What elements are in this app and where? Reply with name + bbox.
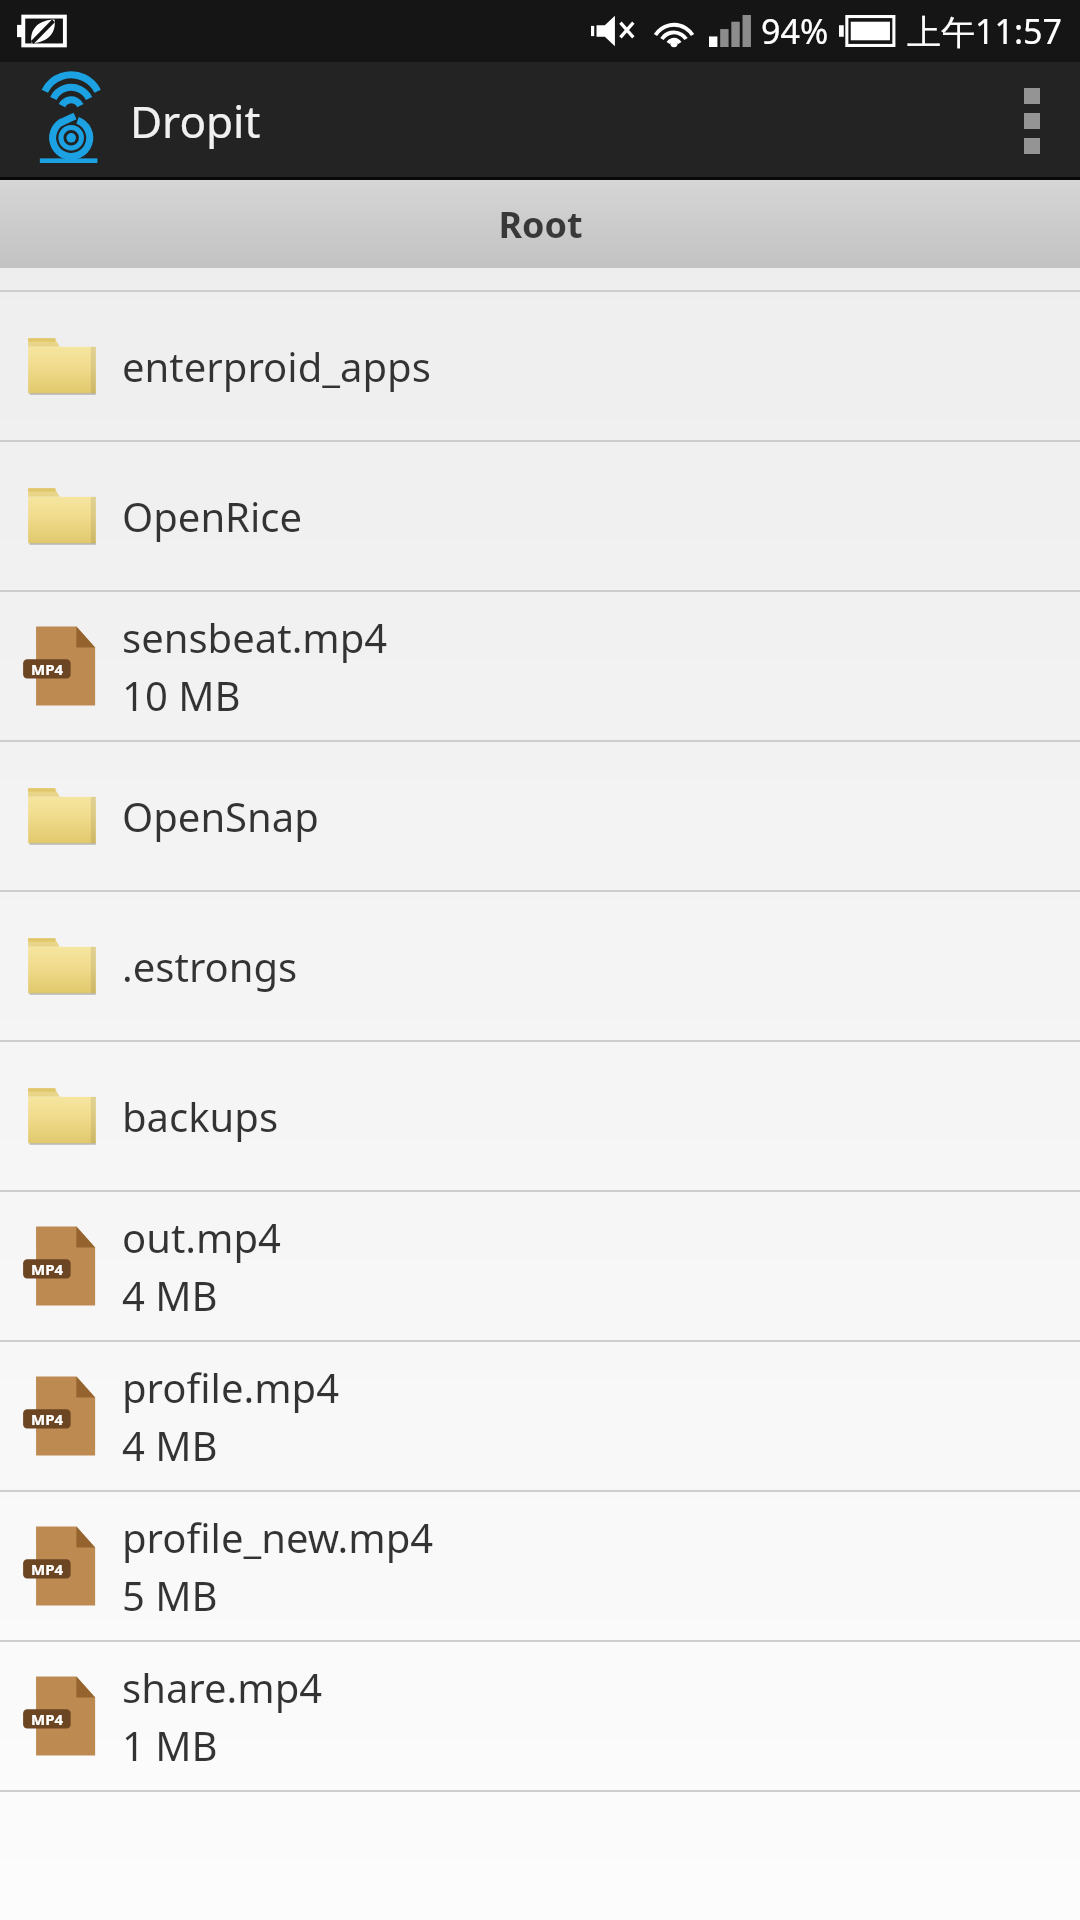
staticText: 1 MB [122,1718,218,1772]
staticText: share.mp4 [122,1660,323,1714]
button[interactable]: MP4 [0,592,1080,740]
staticText: MP4 [31,1259,64,1279]
staticText: 10 MB [122,668,241,722]
staticText: .estrongs [122,939,298,993]
staticText: backups [122,1089,279,1143]
staticText: enterproid_apps [122,339,431,393]
staticText: MP4 [31,1409,64,1429]
staticText: out.mp4 [122,1210,281,1264]
staticText: Root [498,200,583,249]
staticText: 94% [761,8,829,54]
staticText: sensbeat.mp4 [122,610,388,664]
staticText: OpenRice [122,489,303,543]
staticText: profile.mp4 [122,1360,340,1414]
staticText: OpenSnap [122,789,319,843]
button[interactable]: OpenSnap [0,742,1080,890]
button[interactable]: MP4 [0,1192,1080,1340]
staticText: Dropit [130,91,261,151]
button[interactable]: backups [0,1042,1080,1190]
button[interactable]: OpenRice [0,442,1080,590]
button[interactable]: MP4 [0,1642,1080,1790]
staticText: MP4 [31,659,64,679]
staticText: profile_new.mp4 [122,1510,434,1564]
staticText: MP4 [31,1709,64,1729]
staticText: 4 MB [122,1418,218,1472]
button[interactable]: MP4 [0,1492,1080,1640]
staticText: 4 MB [122,1268,218,1322]
button[interactable]: More options [984,62,1080,180]
staticText: MP4 [31,1559,64,1579]
button[interactable]: .estrongs [0,892,1080,1040]
button[interactable]: MP4 [0,1342,1080,1490]
staticText: 上午11:57 [907,8,1062,54]
button[interactable]: enterproid_apps [0,292,1080,440]
staticText: 5 MB [122,1568,218,1622]
